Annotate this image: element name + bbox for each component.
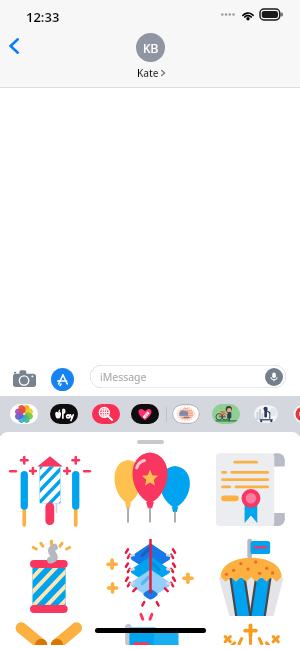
button[interactable]: Flag sticker (172, 404, 200, 424)
button[interactable]: Back (2, 34, 26, 58)
staticText: Kate (137, 66, 159, 80)
staticText: KB (143, 40, 159, 56)
button[interactable]: More (292, 404, 300, 424)
button[interactable]: iMessage (90, 365, 286, 388)
staticText: iMessage (100, 370, 147, 384)
button[interactable]: Bike sticker (212, 404, 240, 424)
button[interactable]: Sticker (102, 540, 198, 628)
button[interactable]: App Store (51, 368, 74, 391)
button[interactable]: Fitness (131, 404, 159, 424)
button[interactable]: Sticker (2, 628, 98, 645)
button[interactable]: Sticker (102, 452, 198, 540)
button[interactable]: KB (136, 33, 165, 80)
button[interactable]: Camera (10, 367, 38, 390)
staticText: 12:33 (26, 8, 60, 26)
button[interactable]: Apple Pay (50, 404, 78, 424)
button[interactable]: Sticker (202, 452, 298, 540)
button[interactable]: Sticker (202, 540, 298, 628)
button[interactable]: Sticker (2, 540, 98, 628)
button[interactable]: Photos (10, 404, 38, 424)
button[interactable]: Sticker (2, 452, 98, 540)
button[interactable]: Sticker (102, 628, 198, 645)
button[interactable]: Sticker (202, 628, 298, 645)
button[interactable]: City sticker (252, 404, 280, 424)
button[interactable]: Audio message (265, 368, 283, 386)
button[interactable]: Search (92, 404, 120, 424)
